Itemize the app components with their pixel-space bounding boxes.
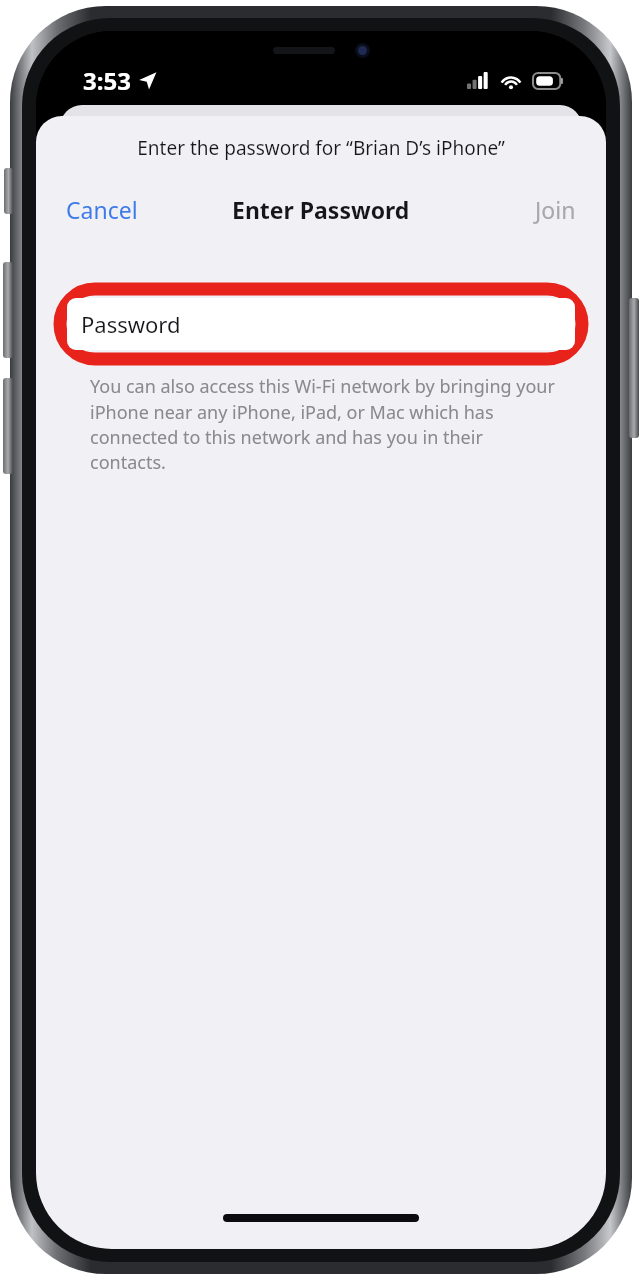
button[interactable]: Cancel bbox=[36, 190, 168, 229]
staticText: 3:53 bbox=[83, 64, 131, 97]
button[interactable]: Join bbox=[505, 190, 606, 229]
staticText: Cancel bbox=[66, 194, 138, 225]
staticText: Join bbox=[535, 194, 576, 225]
staticText: You can also access this Wi-Fi network b… bbox=[90, 374, 562, 474]
staticText: Password bbox=[81, 309, 181, 339]
staticText: Enter the password for “Brian D’s iPhone… bbox=[50, 135, 592, 161]
staticText: Enter Password bbox=[232, 194, 410, 225]
button[interactable]: Password bbox=[67, 298, 575, 350]
